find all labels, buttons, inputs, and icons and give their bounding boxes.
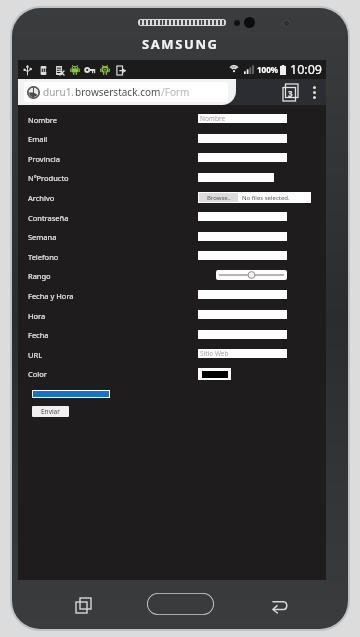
button[interactable]: More options (306, 84, 322, 100)
button[interactable]: Fecha (28, 330, 49, 340)
staticText: Enviar (41, 407, 60, 416)
button[interactable]: Semana (28, 232, 57, 242)
button[interactable]: Rango (28, 271, 51, 281)
button[interactable]: Rango slider (216, 270, 287, 280)
button[interactable]: Nombre (28, 115, 58, 125)
button[interactable]: Hora (28, 311, 46, 321)
staticText: 100% (257, 64, 278, 75)
button[interactable]: Home (147, 593, 214, 615)
button[interactable]: Color picker (198, 368, 231, 380)
staticText: Sitio Web (200, 349, 229, 358)
staticText: Nombre (200, 114, 226, 123)
button[interactable]: Tabs (283, 84, 300, 101)
staticText: duru1. (43, 85, 75, 99)
staticText: SAMSUNG (142, 35, 219, 53)
staticText: 3 (288, 88, 293, 99)
button[interactable]: Nombre (198, 114, 287, 123)
button[interactable]: Color (28, 369, 47, 379)
button[interactable]: Sitio Web (198, 349, 287, 358)
button[interactable]: duru1. (24, 82, 228, 102)
staticText: Browse.. (207, 194, 231, 202)
button[interactable]: Back (264, 590, 294, 620)
staticText: No files selected. (242, 194, 290, 202)
button[interactable]: Fecha y Hora (28, 291, 74, 301)
button[interactable]: Archivo (28, 193, 55, 203)
button[interactable]: Telefono (28, 252, 59, 262)
button[interactable]: Provincia (28, 154, 60, 164)
button[interactable]: URL (28, 350, 43, 360)
button[interactable]: Contraseña (28, 213, 69, 223)
staticText: /Form (161, 85, 190, 99)
staticText: browserstack.com (75, 85, 161, 99)
staticText: 10:09 (290, 61, 322, 78)
button[interactable]: NºProducto (28, 173, 69, 183)
button[interactable]: Enviar (32, 406, 69, 417)
button[interactable]: Email (28, 134, 48, 144)
button[interactable]: Browse.. (198, 192, 311, 203)
button[interactable]: Recent apps (68, 590, 98, 620)
